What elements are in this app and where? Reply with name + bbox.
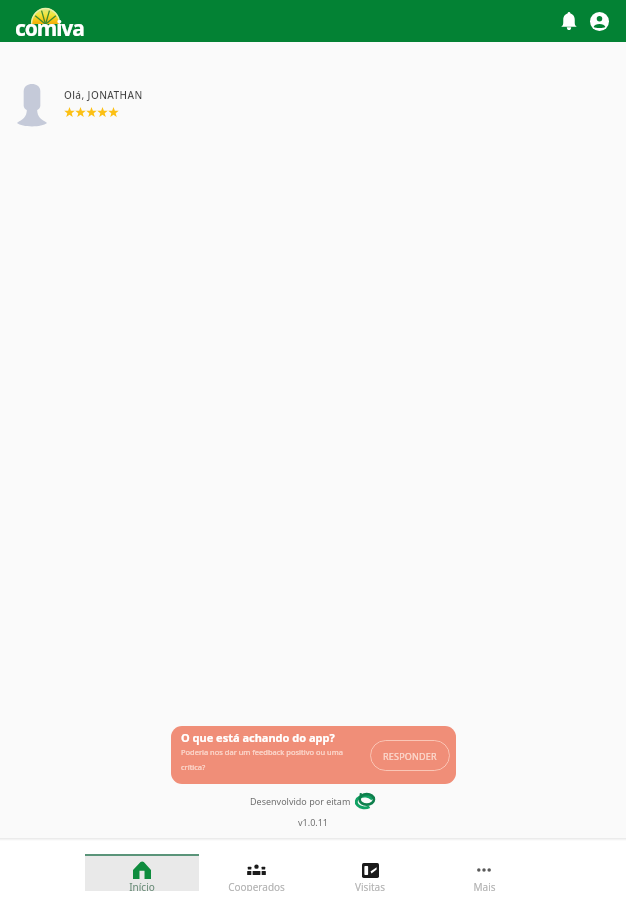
staticText: Desenvolvido por eitam	[250, 795, 351, 807]
staticText: v1.0.11	[298, 816, 328, 828]
button[interactable]: Mais	[427, 854, 541, 891]
staticText: Olá, JONATHAN	[64, 88, 143, 102]
staticText: Poderia nos dar um feedback positivo ou …	[181, 747, 353, 772]
button[interactable]: Cooperados	[199, 854, 313, 891]
button[interactable]: RESPONDER	[370, 740, 450, 771]
staticText: O que está achando do app?	[181, 730, 335, 745]
staticText: RESPONDER	[383, 750, 437, 762]
button[interactable]: Início	[85, 854, 199, 891]
button[interactable]: Visitas	[313, 854, 427, 891]
staticText: Mais	[473, 880, 496, 891]
staticText: Cooperados	[228, 880, 285, 891]
button[interactable]: O que está achando do app?	[171, 726, 456, 784]
staticText: comiva	[15, 14, 84, 42]
staticText: Início	[129, 880, 155, 891]
button[interactable]: Notifications	[554, 6, 584, 36]
button[interactable]: Account	[584, 6, 614, 36]
staticText: Visitas	[355, 880, 385, 891]
